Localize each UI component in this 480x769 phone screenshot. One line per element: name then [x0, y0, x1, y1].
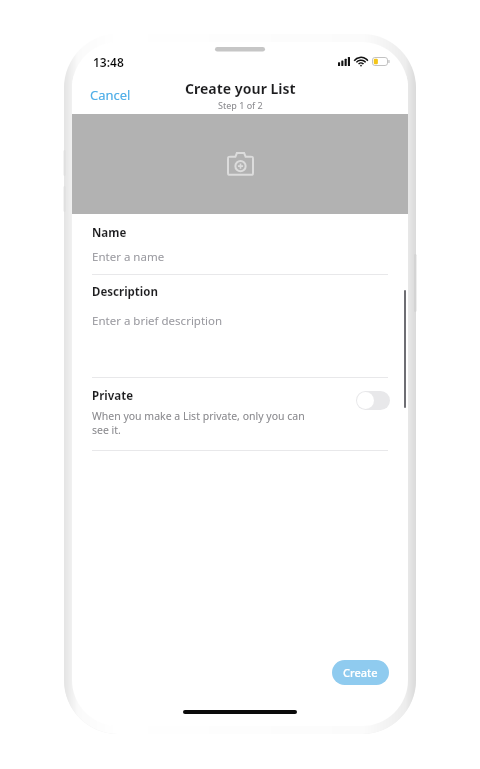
- staticText: Name: [92, 225, 127, 241]
- staticText: Cancel: [90, 86, 131, 104]
- staticText: Description: [92, 284, 158, 300]
- button[interactable]: Cancel: [83, 81, 138, 109]
- staticText: Enter a name: [92, 249, 165, 265]
- staticText: 13:48: [93, 54, 124, 70]
- staticText: Create your List: [185, 79, 296, 98]
- staticText: Enter a brief description: [92, 313, 223, 329]
- button[interactable]: Name: [72, 214, 408, 274]
- staticText: Private: [92, 388, 134, 404]
- staticText: Step 1 of 2: [218, 99, 263, 111]
- button[interactable]: Private toggle, off: [356, 391, 390, 410]
- button[interactable]: Private: [72, 378, 408, 450]
- button[interactable]: Add cover photo: [72, 114, 408, 214]
- button[interactable]: Description: [72, 275, 408, 377]
- button[interactable]: Create: [332, 660, 389, 685]
- staticText: When you make a List private, only you c…: [92, 409, 305, 437]
- staticText: Create: [343, 665, 378, 680]
